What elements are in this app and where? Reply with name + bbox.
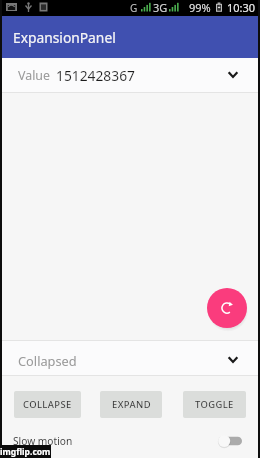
staticText: EXPAND [112, 398, 151, 411]
staticText: 99% [189, 0, 211, 15]
button[interactable]: Value [0, 58, 260, 92]
staticText: imgflip.com [0, 446, 51, 458]
staticText: Slow motion [13, 434, 73, 448]
staticText: ExpansionPanel [13, 28, 116, 47]
staticText: G [130, 1, 138, 15]
staticText: TOGGLE [195, 398, 234, 411]
staticText: Value [18, 67, 50, 84]
button[interactable]: EXPAND [100, 391, 162, 418]
staticText: Collapsed [18, 352, 77, 369]
staticText: COLLAPSE [23, 398, 72, 411]
staticText: 10:30 [227, 0, 256, 15]
button[interactable]: Refresh [207, 288, 247, 328]
button[interactable]: COLLAPSE [14, 391, 81, 418]
other: Expand [227, 354, 239, 366]
button[interactable]: Slow motion toggle [218, 433, 242, 449]
button[interactable]: Collapsed [0, 341, 260, 375]
button[interactable]: TOGGLE [183, 391, 246, 418]
staticText: 3G [153, 0, 168, 15]
staticText: 1512428367 [56, 66, 135, 85]
other: Expand [227, 69, 239, 81]
